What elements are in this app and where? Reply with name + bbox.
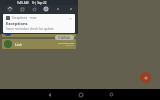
button[interactable] bbox=[2, 6, 76, 13]
staticText: List bbox=[15, 42, 22, 47]
button[interactable]: Quick setting toggle bbox=[31, 6, 37, 12]
button[interactable]: Home bbox=[76, 90, 85, 99]
button[interactable]: Back bbox=[45, 90, 54, 99]
button[interactable]: Exceptions · now bbox=[3, 14, 75, 33]
staticText: Exceptions bbox=[6, 21, 28, 26]
button[interactable]: Note bbox=[2, 27, 76, 37]
button[interactable]: Quick setting toggle bbox=[68, 6, 74, 12]
staticText: Reminder bbox=[15, 18, 34, 23]
button[interactable]: Recent apps bbox=[107, 90, 116, 99]
staticText: Note bbox=[15, 30, 25, 35]
button[interactable]: Quick setting toggle bbox=[55, 6, 61, 12]
button[interactable]: Reminder bbox=[2, 15, 76, 25]
button[interactable]: CLEAR ALL bbox=[55, 35, 74, 40]
staticText: Exceptions · now bbox=[12, 16, 37, 20]
button[interactable]: List bbox=[2, 39, 76, 49]
staticText: CLEAR ALL bbox=[58, 36, 71, 39]
staticText: 9:45 AM bbox=[17, 1, 29, 5]
staticText: Fri, Sep 22 bbox=[32, 1, 47, 5]
staticText: Some reminders check for update bbox=[6, 27, 54, 31]
button[interactable]: New note bbox=[140, 72, 151, 83]
button[interactable]: Quick setting toggle bbox=[7, 6, 13, 12]
button[interactable]: Quick setting toggle bbox=[19, 6, 25, 12]
button[interactable]: Quick setting toggle bbox=[43, 6, 49, 12]
